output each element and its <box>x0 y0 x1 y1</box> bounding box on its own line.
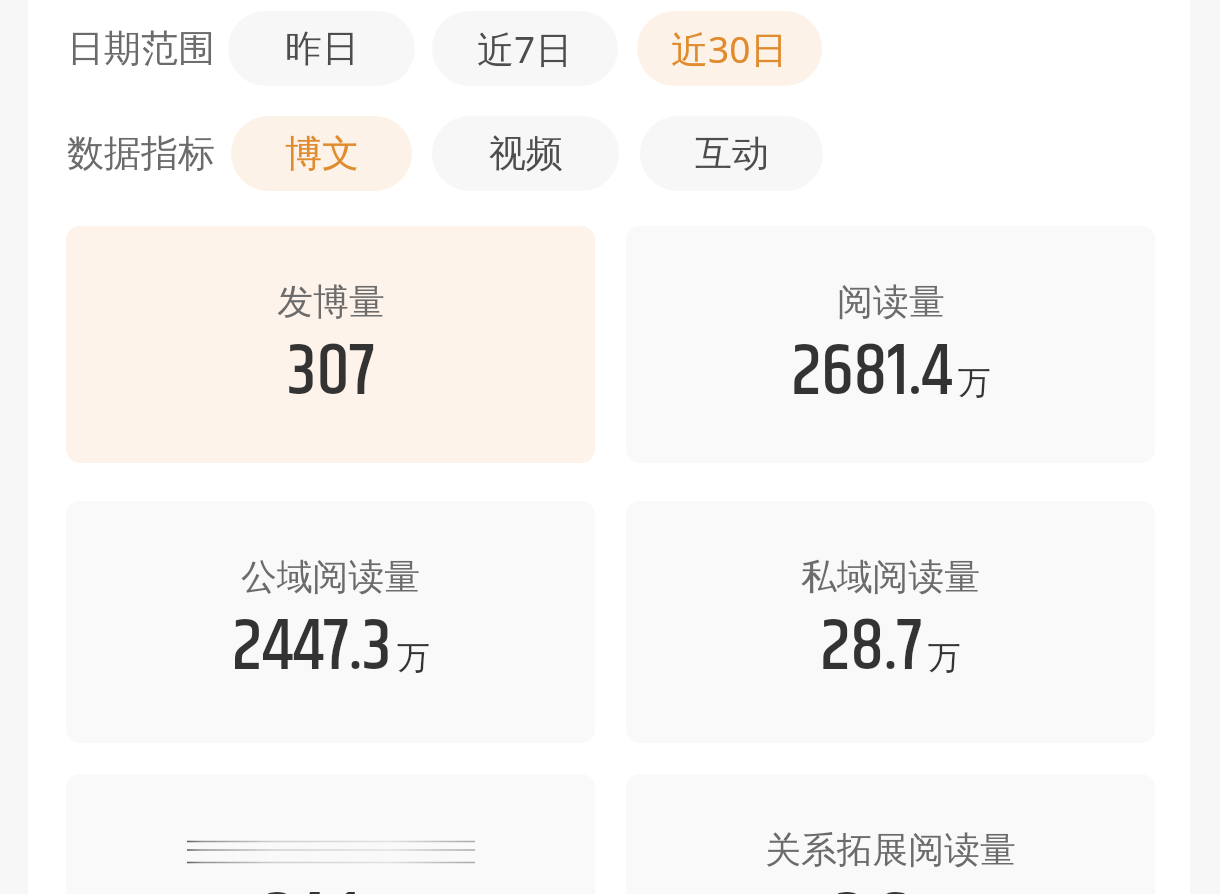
button[interactable]: 博文 <box>231 116 412 191</box>
staticText: 2681.4 万 <box>791 317 991 429</box>
button[interactable]: 推荐阅读量 <box>66 774 595 894</box>
button[interactable]: 视频 <box>432 116 619 191</box>
button[interactable]: 近30日 <box>637 11 822 86</box>
button[interactable]: 昨日 <box>228 11 415 86</box>
button[interactable]: 近7日 <box>432 11 618 86</box>
staticText: 发博量 <box>277 280 385 325</box>
staticText: 2.6 万 <box>834 865 948 894</box>
staticText: 关系拓展阅读量 <box>765 828 1016 873</box>
staticText: 近30日 <box>671 23 788 74</box>
staticText: 博文 <box>285 130 359 177</box>
staticText: 2447.3 万 <box>232 592 430 704</box>
button[interactable]: 私域阅读量 <box>626 501 1155 743</box>
staticText: 视频 <box>489 130 563 177</box>
staticText: 阅读量 <box>837 280 945 325</box>
staticText: 近7日 <box>477 23 573 74</box>
staticText: 数据指标 <box>67 130 215 177</box>
button[interactable]: 关系拓展阅读量 <box>626 774 1155 894</box>
button[interactable]: 互动 <box>640 116 823 191</box>
button[interactable]: 公域阅读量 <box>66 501 595 743</box>
staticText: 307 <box>287 317 375 429</box>
staticText: 私域阅读量 <box>801 555 980 600</box>
staticText: 28.7 万 <box>820 592 961 704</box>
button[interactable]: 发博量 <box>66 226 595 463</box>
staticText: 日期范围 <box>67 25 215 72</box>
staticText: 昨日 <box>285 25 359 72</box>
staticText: 推荐阅读量 <box>242 828 421 873</box>
staticText: 24.1 万 <box>264 865 398 894</box>
staticText: 公域阅读量 <box>241 555 420 600</box>
button[interactable]: 阅读量 <box>626 226 1155 463</box>
staticText: 互动 <box>695 130 769 177</box>
